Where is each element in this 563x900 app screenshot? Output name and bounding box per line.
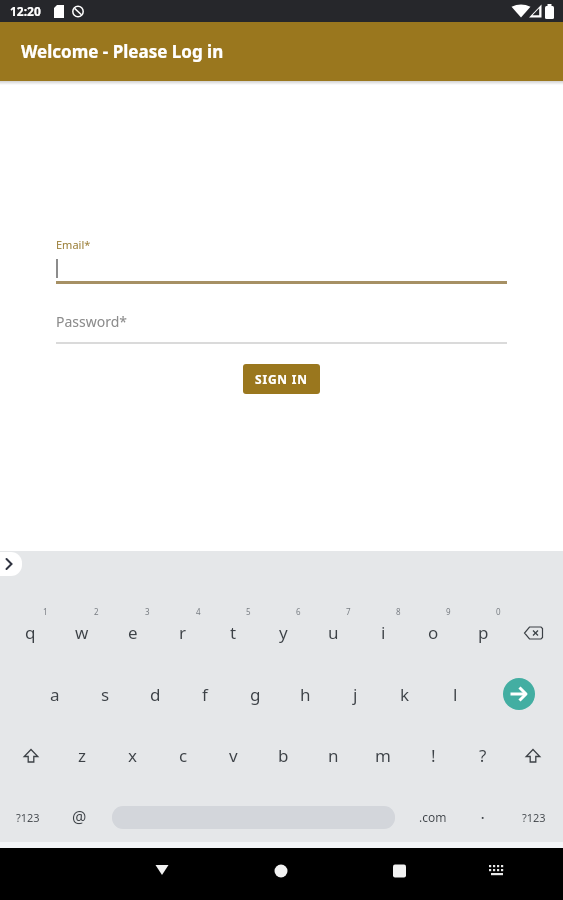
button[interactable]: m <box>358 725 408 786</box>
button[interactable]: ? <box>458 725 508 786</box>
staticText: h <box>300 683 311 706</box>
staticText: c <box>179 744 188 767</box>
button[interactable]: g <box>230 663 280 725</box>
staticText: b <box>278 744 289 767</box>
staticText: q <box>25 621 36 644</box>
button[interactable]: i <box>358 602 408 663</box>
staticText: @ <box>72 806 87 828</box>
button[interactable]: z <box>56 725 107 786</box>
button[interactable]: ?123 <box>0 786 56 848</box>
button[interactable]: c <box>158 725 208 786</box>
staticText: 6 <box>296 606 301 617</box>
staticText: x <box>128 744 137 767</box>
button[interactable] <box>56 259 507 278</box>
button[interactable] <box>140 848 281 900</box>
button[interactable]: p <box>458 602 508 663</box>
staticText: i <box>381 621 386 644</box>
button[interactable]: q <box>5 602 56 663</box>
staticText: m <box>375 744 391 767</box>
button[interactable]: l <box>430 663 480 725</box>
staticText: e <box>128 621 138 644</box>
button[interactable] <box>281 848 422 900</box>
staticText: Password* <box>56 312 128 331</box>
staticText: f <box>202 683 208 706</box>
staticText: l <box>453 683 458 706</box>
button[interactable] <box>5 725 56 786</box>
button[interactable] <box>508 725 558 786</box>
button[interactable]: a <box>30 663 80 725</box>
staticText: w <box>75 621 89 644</box>
staticText: .com <box>419 809 447 825</box>
button[interactable]: n <box>308 725 358 786</box>
button[interactable]: ! <box>408 725 458 786</box>
button[interactable] <box>503 678 535 710</box>
staticText: 1 <box>43 606 48 617</box>
staticText: Welcome - Please Log in <box>21 40 224 63</box>
staticText: r <box>179 621 187 644</box>
button[interactable]: e <box>107 602 158 663</box>
button[interactable]: w <box>56 602 107 663</box>
staticText: ? <box>479 744 487 767</box>
staticText: 3 <box>145 606 150 617</box>
staticText: 12:20 <box>10 3 41 19</box>
staticText: v <box>229 744 238 767</box>
button[interactable]: s <box>80 663 130 725</box>
staticText: ?123 <box>522 810 546 825</box>
staticText: 0 <box>496 606 501 617</box>
staticText: Email* <box>56 237 91 252</box>
button[interactable]: o <box>408 602 458 663</box>
staticText: z <box>78 744 86 767</box>
button[interactable]: b <box>258 725 308 786</box>
staticText: j <box>353 683 358 706</box>
button[interactable]: k <box>380 663 430 725</box>
staticText: g <box>250 683 261 706</box>
staticText: · <box>481 809 485 825</box>
button[interactable]: h <box>280 663 330 725</box>
staticText: SIGN IN <box>255 371 308 387</box>
staticText: 4 <box>196 606 201 617</box>
staticText: ?123 <box>16 810 40 825</box>
button[interactable]: · <box>460 786 505 848</box>
staticText: s <box>101 683 110 706</box>
button[interactable]: j <box>330 663 380 725</box>
staticText: o <box>428 621 439 644</box>
button[interactable] <box>422 848 563 900</box>
button[interactable]: y <box>258 602 308 663</box>
staticText: 7 <box>346 606 351 617</box>
button[interactable]: x <box>107 725 158 786</box>
button[interactable]: ?123 <box>505 786 563 848</box>
staticText: ! <box>431 744 436 767</box>
staticText: p <box>478 621 489 644</box>
staticText: 2 <box>94 606 99 617</box>
button[interactable]: u <box>308 602 358 663</box>
staticText: t <box>230 621 237 644</box>
staticText: a <box>50 683 60 706</box>
button[interactable]: f <box>180 663 230 725</box>
staticText: 8 <box>396 606 401 617</box>
staticText: 9 <box>446 606 451 617</box>
staticText: y <box>279 621 288 644</box>
button[interactable]: d <box>130 663 180 725</box>
button[interactable]: @ <box>56 786 102 848</box>
button[interactable] <box>508 602 558 663</box>
button[interactable]: r <box>158 602 208 663</box>
staticText: u <box>328 621 339 644</box>
staticText: 5 <box>246 606 251 617</box>
staticText: k <box>400 683 410 706</box>
staticText: d <box>150 683 161 706</box>
button[interactable] <box>0 552 22 576</box>
button[interactable]: .com <box>405 786 460 848</box>
button[interactable]: t <box>208 602 258 663</box>
button[interactable]: SIGN IN <box>243 364 320 394</box>
staticText: n <box>328 744 339 767</box>
button[interactable]: v <box>208 725 258 786</box>
